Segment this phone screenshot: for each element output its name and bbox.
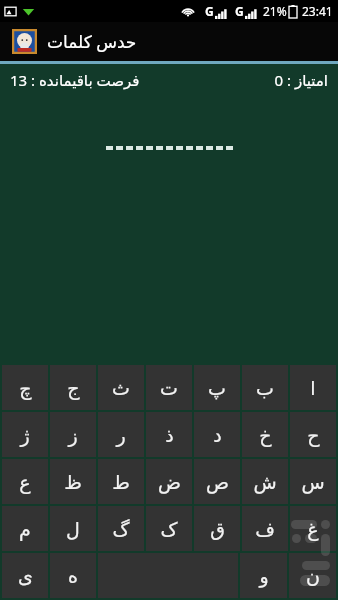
button[interactable]: ر bbox=[98, 412, 144, 457]
button[interactable]: ع bbox=[2, 459, 48, 504]
button[interactable]: ض bbox=[146, 459, 192, 504]
button[interactable]: ک bbox=[146, 506, 192, 551]
staticText: G bbox=[205, 3, 214, 19]
staticText: و bbox=[259, 565, 269, 587]
button[interactable]: ژ bbox=[2, 412, 48, 457]
button[interactable]: ط bbox=[98, 459, 144, 504]
staticText: امتیاز : 0 bbox=[274, 70, 328, 90]
button[interactable]: ا bbox=[290, 365, 336, 410]
staticText: م bbox=[19, 518, 31, 540]
staticText: ص bbox=[206, 471, 229, 493]
staticText: 23:41 bbox=[302, 3, 333, 19]
button[interactable]: ص bbox=[194, 459, 240, 504]
staticText: ز bbox=[68, 424, 78, 446]
button[interactable]: ی bbox=[2, 553, 48, 598]
staticText: چ bbox=[19, 377, 32, 399]
button[interactable]: چ bbox=[2, 365, 48, 410]
staticText: ن bbox=[306, 565, 320, 587]
staticText: ک bbox=[160, 518, 178, 540]
staticText: ق bbox=[210, 518, 225, 540]
button[interactable]: ذ bbox=[146, 412, 192, 457]
staticText: س bbox=[301, 471, 325, 493]
staticText: 21% bbox=[263, 3, 287, 19]
staticText: حدس کلمات bbox=[47, 30, 137, 53]
staticText: ح bbox=[307, 424, 320, 446]
button[interactable]: د bbox=[194, 412, 240, 457]
staticText: ظ bbox=[64, 471, 82, 493]
staticText: ج bbox=[67, 377, 80, 399]
button[interactable]: ث bbox=[98, 365, 144, 410]
button[interactable]: غ bbox=[290, 506, 336, 551]
button[interactable]: پ bbox=[194, 365, 240, 410]
button[interactable]: ش bbox=[242, 459, 288, 504]
button[interactable]: ظ bbox=[50, 459, 96, 504]
staticText: فرصت باقیمانده : 13 bbox=[10, 70, 140, 90]
staticText: خ bbox=[259, 424, 272, 446]
staticText: ش bbox=[253, 471, 277, 493]
button[interactable]: ن bbox=[289, 553, 336, 598]
button[interactable]: و bbox=[240, 553, 287, 598]
staticText: ت bbox=[160, 377, 178, 399]
button[interactable]: ز bbox=[50, 412, 96, 457]
staticText: ی bbox=[18, 565, 33, 587]
staticText: ف bbox=[255, 518, 275, 540]
staticText: ث bbox=[112, 377, 130, 399]
staticText: د bbox=[213, 424, 222, 446]
button[interactable]: حدس کلمات bbox=[0, 22, 338, 61]
button[interactable]: ت bbox=[146, 365, 192, 410]
staticText: ب bbox=[256, 377, 274, 399]
staticText: ه bbox=[68, 565, 78, 587]
button[interactable]: ه bbox=[50, 553, 96, 598]
staticText: ر bbox=[116, 424, 126, 446]
staticText: ذ bbox=[165, 424, 174, 446]
staticText: گ bbox=[112, 518, 130, 540]
button[interactable]: خ bbox=[242, 412, 288, 457]
button[interactable]: ب bbox=[242, 365, 288, 410]
staticText: G bbox=[235, 3, 244, 19]
button[interactable]: ح bbox=[290, 412, 336, 457]
staticText: پ bbox=[208, 377, 226, 399]
button[interactable]: گ bbox=[98, 506, 144, 551]
button[interactable]: م bbox=[2, 506, 48, 551]
staticText: ژ bbox=[20, 424, 30, 446]
staticText: ط bbox=[112, 471, 130, 493]
button[interactable]: ق bbox=[194, 506, 240, 551]
staticText: ض bbox=[158, 471, 181, 493]
staticText: ا bbox=[310, 377, 316, 399]
button[interactable]: ف bbox=[242, 506, 288, 551]
staticText: ع bbox=[19, 471, 31, 493]
staticText: ل bbox=[66, 518, 80, 540]
staticText: غ bbox=[307, 518, 319, 540]
button[interactable]: س bbox=[290, 459, 336, 504]
button[interactable]: ج bbox=[50, 365, 96, 410]
button[interactable]: ل bbox=[50, 506, 96, 551]
